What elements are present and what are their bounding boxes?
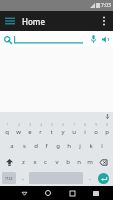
button[interactable]: 5 [46,120,57,138]
button[interactable]: g [52,138,63,154]
button[interactable]: ?123 [2,172,16,184]
button[interactable]: 1 [1,120,13,138]
staticText: 0 [106,123,108,127]
button[interactable]: 0 [101,120,112,138]
button[interactable]: b [62,154,73,170]
staticText: k [89,142,93,150]
staticText: e [28,128,32,136]
staticText: j [79,142,81,150]
button[interactable]: d [30,138,41,154]
staticText: . [89,174,91,182]
button[interactable]: , [17,171,28,185]
button[interactable]: m [84,154,95,170]
button[interactable]: c [40,154,51,170]
button[interactable]: a [6,138,18,154]
button[interactable]: 2 [13,120,24,138]
button[interactable]: 3 [24,120,35,138]
staticText: 2 [18,123,20,127]
button[interactable]: v [51,154,62,170]
button[interactable]: f [41,138,52,154]
staticText: c [44,158,47,166]
button[interactable]: 7 [68,120,79,138]
button[interactable]: Search [2,34,13,45]
staticText: l [101,142,103,150]
staticText: x [33,158,37,166]
button[interactable]: j [74,138,85,154]
staticText: 7 [73,123,75,127]
button[interactable]: x [29,154,40,170]
staticText: 1 [6,123,8,127]
staticText: 3 [29,123,31,127]
button[interactable]: k [85,138,96,154]
staticText: i [84,128,86,136]
staticText: a [10,142,14,150]
button[interactable]: 6 [57,120,68,138]
staticText: 8 [84,123,86,127]
staticText: v [55,158,59,166]
staticText: g [56,142,60,150]
button[interactable]: More options [95,12,113,30]
button[interactable]: Recents [60,186,84,200]
button[interactable]: s [18,138,30,154]
staticText: f [45,142,48,150]
button[interactable] [14,33,83,45]
button[interactable]: Voice search [87,33,99,45]
staticText: z [22,158,25,166]
staticText: 7:03 [101,2,111,9]
staticText: 9 [95,123,97,127]
staticText: s [23,142,26,150]
staticText: 4 [40,123,42,127]
button[interactable]: Hide keyboard [13,186,36,200]
button[interactable]: Enter [96,172,111,184]
button[interactable]: Backspace [95,154,112,170]
button[interactable]: Shift [1,154,18,170]
staticText: 6 [62,123,64,127]
staticText: w [16,128,21,136]
button[interactable]: n [73,154,84,170]
staticText: m [87,158,93,166]
staticText: d [34,142,38,150]
button[interactable]: 8 [79,120,90,138]
button[interactable]: . [84,171,95,185]
staticText: 5 [51,123,53,127]
staticText: u [72,128,76,136]
staticText: Home [22,16,46,27]
staticText: t [50,128,53,136]
staticText: ?123 [5,176,13,181]
staticText: h [67,142,71,150]
button[interactable]: 9 [90,120,101,138]
staticText: n [77,158,81,166]
button[interactable]: l [96,138,107,154]
button[interactable]: Open navigation drawer [0,11,20,31]
staticText: r [39,128,42,136]
button[interactable]: h [63,138,74,154]
button[interactable]: Switch keyboard [84,186,108,200]
button[interactable]: Home [36,186,60,200]
staticText: , [22,174,24,182]
button[interactable]: Speak [99,33,111,45]
staticText: q [5,128,9,136]
button[interactable]: Voice input [104,113,111,120]
button[interactable]: 4 [35,120,46,138]
staticText: p [105,128,109,136]
button[interactable]: z [18,154,29,170]
staticText: b [66,158,70,166]
staticText: o [94,128,98,136]
staticText: y [61,128,65,136]
